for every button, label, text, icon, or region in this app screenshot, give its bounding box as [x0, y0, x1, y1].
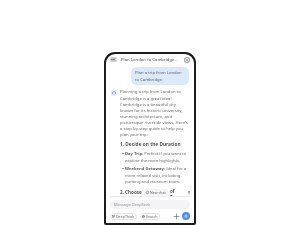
staticText: DeepThink	[116, 214, 135, 219]
staticText: Weekend Getaway: Ideal for a more relaxe…	[125, 166, 189, 184]
button[interactable]: DeepThink	[110, 213, 137, 220]
button[interactable]: Message DeepSeek	[110, 200, 190, 209]
staticText: 2. Choose	[120, 189, 142, 195]
button[interactable]: New chat	[144, 189, 168, 196]
staticText: Day Trip: Perfect if you want to explore…	[125, 151, 189, 163]
staticText: Search	[146, 214, 158, 219]
staticText: 1. Decide on the Duration	[120, 141, 181, 148]
button[interactable]: Attach	[173, 213, 180, 220]
button[interactable]: Plan a trip from London to Cambridge.	[131, 67, 189, 85]
button[interactable]: Close	[183, 56, 190, 63]
staticText: New chat	[150, 190, 166, 195]
staticText: Planning a trip from London to Cambridge…	[120, 89, 189, 137]
staticText: Plan London to Cambridge...	[121, 57, 178, 63]
staticText: Plan a trip from London to Cambridge.	[135, 70, 185, 82]
staticText: of Transpo	[170, 188, 189, 196]
button[interactable]: Menu	[110, 56, 117, 63]
button[interactable]: Search	[140, 213, 160, 220]
staticText: Message DeepSeek	[114, 202, 151, 207]
button[interactable]: Voice input	[182, 212, 190, 220]
